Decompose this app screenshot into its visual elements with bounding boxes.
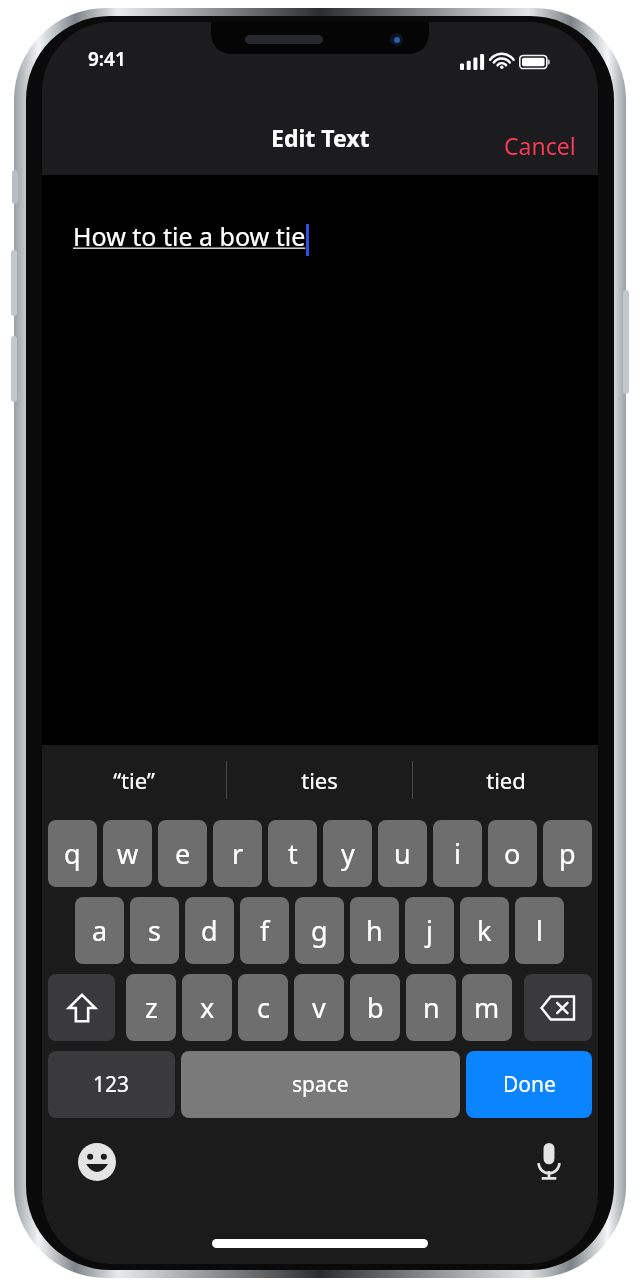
- staticText: Cancel: [504, 130, 576, 161]
- staticText: n: [423, 989, 440, 1026]
- staticText: s: [148, 912, 161, 949]
- button[interactable]: v: [294, 974, 344, 1041]
- staticText: l: [536, 912, 543, 949]
- button[interactable]: m: [462, 974, 512, 1041]
- staticText: o: [504, 835, 521, 872]
- staticText: x: [200, 989, 215, 1026]
- button[interactable]: Backspace: [524, 974, 592, 1041]
- button[interactable]: d: [185, 897, 234, 964]
- staticText: Edit Text: [271, 122, 370, 153]
- staticText: How to tie a bow tie: [73, 219, 306, 253]
- button[interactable]: How to tie a bow tie: [42, 175, 598, 745]
- button[interactable]: u: [378, 820, 427, 887]
- staticText: g: [311, 912, 328, 949]
- button[interactable]: x: [182, 974, 232, 1041]
- staticText: 123: [93, 1070, 130, 1099]
- button[interactable]: j: [405, 897, 454, 964]
- button[interactable]: q: [48, 820, 97, 887]
- staticText: c: [257, 989, 270, 1026]
- button[interactable]: w: [103, 820, 152, 887]
- button[interactable]: ties: [227, 745, 412, 815]
- button[interactable]: n: [406, 974, 456, 1041]
- staticText: w: [117, 835, 139, 872]
- staticText: e: [175, 835, 191, 872]
- staticText: k: [477, 912, 492, 949]
- staticText: ties: [301, 765, 338, 795]
- staticText: “tie”: [113, 765, 155, 795]
- staticText: tied: [486, 765, 526, 795]
- button[interactable]: k: [460, 897, 509, 964]
- staticText: 9:41: [88, 46, 126, 72]
- button[interactable]: h: [350, 897, 399, 964]
- staticText: i: [454, 835, 461, 872]
- staticText: space: [292, 1070, 349, 1099]
- staticText: Done: [503, 1070, 556, 1099]
- button[interactable]: Done: [466, 1051, 592, 1118]
- button[interactable]: space: [181, 1051, 460, 1118]
- staticText: f: [260, 912, 270, 949]
- button[interactable]: s: [130, 897, 179, 964]
- button[interactable]: Shift: [48, 974, 115, 1041]
- button[interactable]: p: [543, 820, 592, 887]
- staticText: a: [92, 912, 108, 949]
- staticText: h: [366, 912, 383, 949]
- button[interactable]: t: [268, 820, 317, 887]
- staticText: d: [201, 912, 218, 949]
- staticText: r: [232, 835, 244, 872]
- staticText: p: [559, 835, 576, 872]
- button[interactable]: tied: [413, 745, 598, 815]
- button[interactable]: f: [240, 897, 289, 964]
- button[interactable]: i: [433, 820, 482, 887]
- staticText: u: [394, 835, 411, 872]
- button[interactable]: l: [515, 897, 564, 964]
- button[interactable]: b: [350, 974, 400, 1041]
- staticText: v: [312, 989, 326, 1026]
- button[interactable]: Emoji keyboard: [68, 1133, 126, 1191]
- staticText: m: [474, 989, 500, 1026]
- button[interactable]: a: [75, 897, 124, 964]
- staticText: z: [145, 989, 158, 1026]
- staticText: j: [426, 912, 433, 949]
- button[interactable]: e: [158, 820, 207, 887]
- button[interactable]: Dictation: [526, 1133, 572, 1191]
- button[interactable]: Cancel: [486, 118, 598, 175]
- button[interactable]: r: [213, 820, 262, 887]
- button[interactable]: 123: [48, 1051, 175, 1118]
- button[interactable]: z: [126, 974, 176, 1041]
- staticText: q: [64, 835, 81, 872]
- button[interactable]: c: [238, 974, 288, 1041]
- staticText: y: [341, 835, 355, 872]
- staticText: t: [288, 835, 298, 872]
- button[interactable]: “tie”: [42, 745, 226, 815]
- button[interactable]: g: [295, 897, 344, 964]
- button[interactable]: y: [323, 820, 372, 887]
- button[interactable]: o: [488, 820, 537, 887]
- staticText: b: [367, 989, 384, 1026]
